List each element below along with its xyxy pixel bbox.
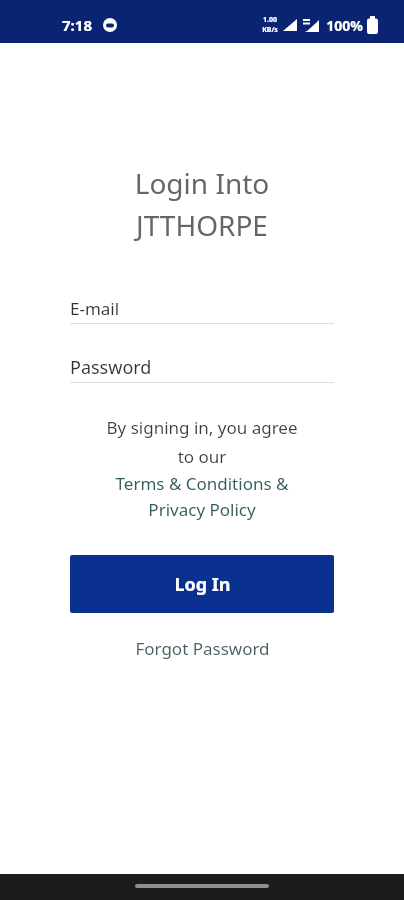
staticText: Log In [174, 572, 231, 597]
staticText: 7:18 [62, 15, 92, 35]
staticText: Password [70, 355, 152, 380]
staticText: By signing in, you agree to our [0, 416, 404, 468]
staticText: 1.00 [263, 15, 277, 25]
staticText: E-mail [70, 297, 120, 320]
button[interactable]: Forgot Password [135, 637, 270, 660]
button[interactable]: Password [70, 355, 334, 383]
staticText: KB/s [262, 25, 278, 35]
button[interactable]: Terms & Conditions & Privacy Policy [0, 472, 404, 521]
staticText: Login Into JTTHORPE [0, 164, 404, 244]
button[interactable]: Log In [70, 555, 334, 613]
button[interactable]: E-mail [70, 297, 334, 324]
staticText: 100% [326, 16, 363, 35]
